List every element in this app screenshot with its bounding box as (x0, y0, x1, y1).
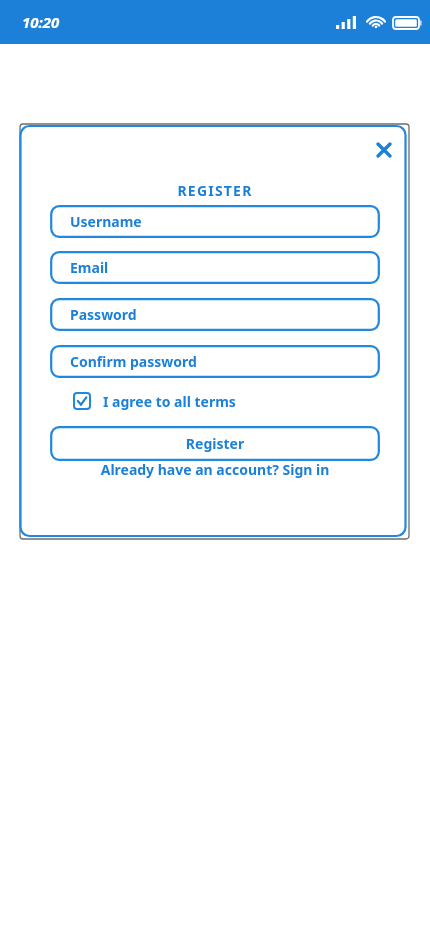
staticText: Password (70, 305, 137, 324)
button[interactable]: Already have an account? Sign in (19, 460, 411, 479)
button[interactable]: Confirm password (50, 345, 380, 378)
button[interactable]: Username (50, 205, 380, 238)
button[interactable]: I agree to all terms (73, 390, 236, 412)
staticText: 10:20 (22, 12, 60, 32)
button[interactable]: Email (50, 251, 380, 284)
button[interactable]: Register (50, 426, 380, 461)
staticText: Confirm password (70, 352, 197, 371)
staticText: Register (50, 434, 380, 453)
staticText: Email (70, 258, 109, 277)
staticText: Username (70, 212, 142, 231)
button[interactable]: Close (370, 136, 398, 164)
staticText: I agree to all terms (103, 392, 236, 411)
button[interactable]: Password (50, 298, 380, 331)
staticText: REGISTER (19, 181, 411, 200)
